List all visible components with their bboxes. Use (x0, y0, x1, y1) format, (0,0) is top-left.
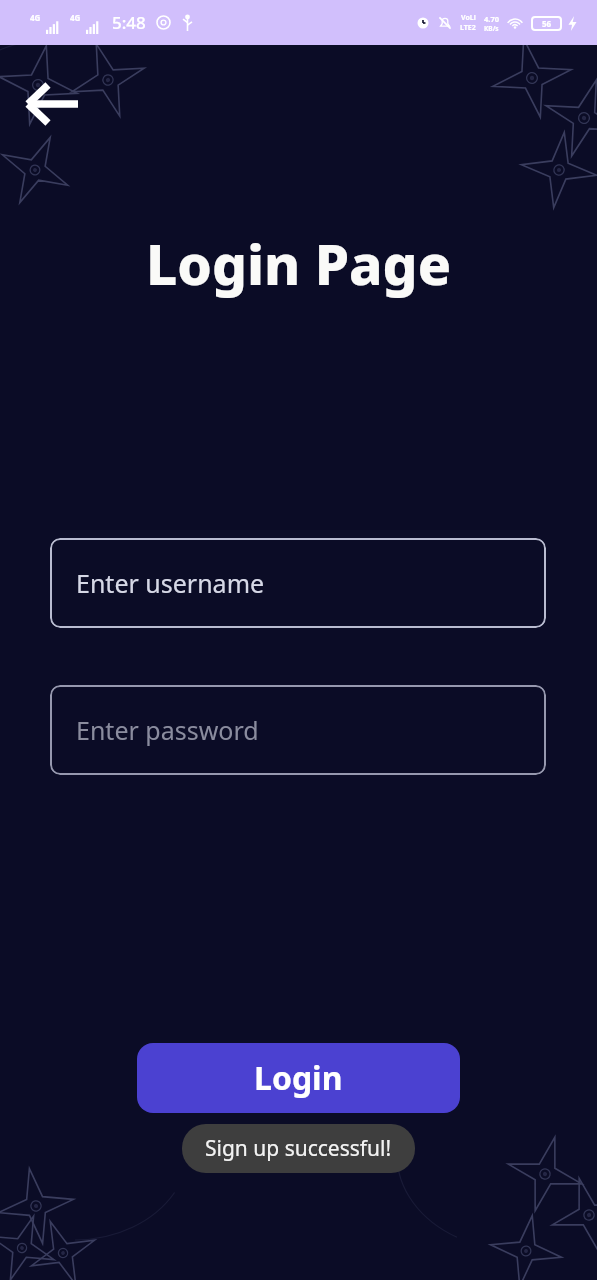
button[interactable]: Login (137, 1043, 460, 1113)
staticText: Login (254, 1056, 343, 1100)
button[interactable]: Enter password (50, 685, 546, 775)
staticText: Enter password (76, 713, 259, 747)
staticText: Sign up successful! (205, 1134, 392, 1163)
staticText: Login Page (0, 226, 597, 301)
staticText: Enter username (76, 566, 265, 600)
button[interactable]: Back (16, 74, 86, 134)
staticText: KB/s (484, 24, 499, 33)
button[interactable]: Enter username (50, 538, 546, 628)
staticText: LTE2 (460, 23, 476, 33)
staticText: 4G (30, 12, 41, 23)
staticText: VoLl (461, 13, 476, 23)
staticText: 56 (542, 18, 552, 29)
staticText: 5:48 (112, 11, 146, 34)
staticText: 4.70 (484, 14, 499, 24)
staticText: 4G (70, 12, 81, 23)
